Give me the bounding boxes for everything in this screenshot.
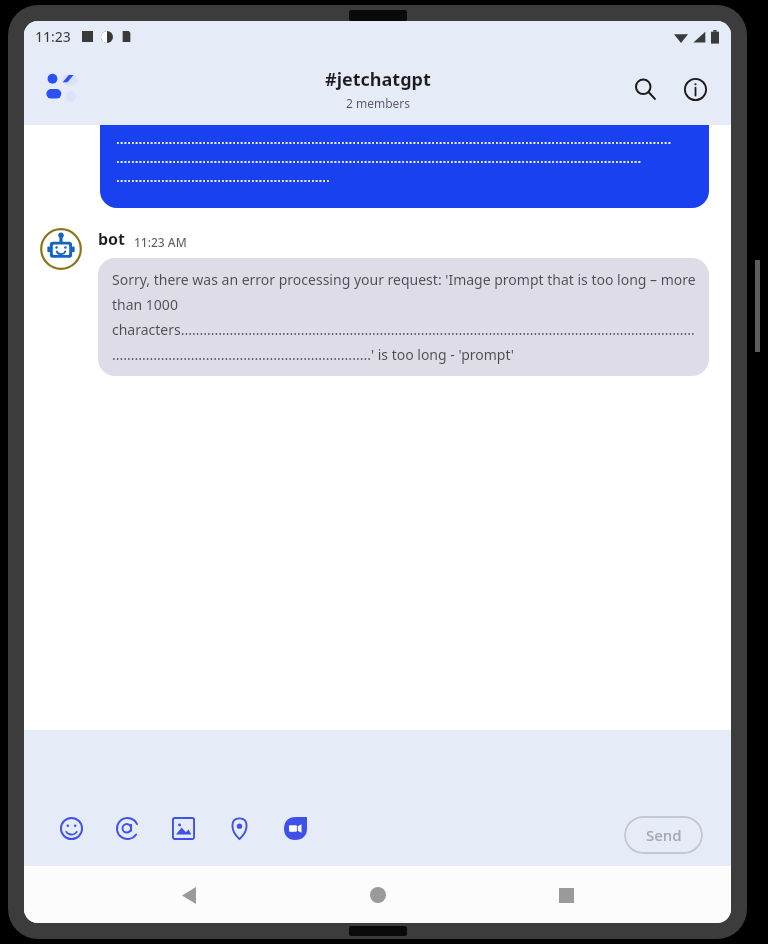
button[interactable]: Insert photo	[166, 811, 200, 845]
button[interactable]: Mention	[110, 811, 144, 845]
button[interactable]: ........................................…	[100, 125, 709, 208]
button[interactable]: JetChat	[40, 67, 84, 111]
button[interactable]: Search	[623, 67, 667, 111]
button[interactable]: Send	[624, 816, 703, 854]
staticText: 11:23	[35, 27, 71, 46]
staticText: ........................................…	[116, 148, 642, 167]
button[interactable]: Sorry, there was an error processing you…	[98, 258, 709, 376]
staticText: bot	[98, 228, 126, 250]
button[interactable]: bot avatar	[40, 228, 82, 270]
button[interactable]: Recent apps	[542, 871, 590, 919]
staticText: ........................................…	[116, 129, 672, 148]
staticText: Sorry, there was an error processing you…	[112, 270, 697, 364]
staticText: #jetchatgpt	[325, 67, 431, 92]
button[interactable]: Back	[165, 871, 213, 919]
button[interactable]: Home	[354, 871, 402, 919]
staticText: Send	[646, 825, 682, 845]
button[interactable]: Info	[673, 67, 717, 111]
staticText: ........................................…	[116, 167, 330, 186]
staticText: 11:23 AM	[134, 234, 187, 250]
button[interactable]: Video call	[278, 811, 312, 845]
button[interactable]: Location	[222, 811, 256, 845]
staticText: 2 members	[346, 95, 411, 111]
button[interactable]: Emoji	[54, 811, 88, 845]
